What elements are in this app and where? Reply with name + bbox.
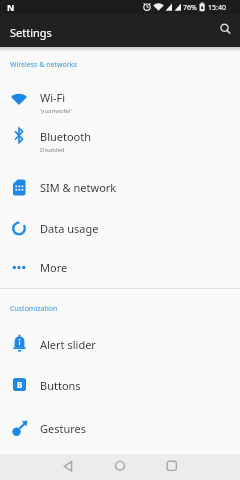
staticText: Wi-Fi (40, 90, 66, 105)
button[interactable] (0, 324, 240, 364)
staticText: B (17, 379, 23, 390)
button[interactable] (152, 454, 192, 480)
button[interactable] (0, 167, 240, 207)
staticText: SIM & network (40, 180, 117, 195)
staticText: Buttons (40, 378, 81, 393)
staticText: Wireless & networks (10, 60, 77, 70)
button[interactable] (212, 15, 238, 41)
button[interactable] (0, 208, 240, 248)
staticText: Disabled (40, 146, 65, 154)
staticText: 'yuanwofei' (40, 107, 72, 115)
staticText: Gestures (40, 421, 87, 436)
staticText: Bluetooth (40, 129, 92, 144)
button[interactable] (0, 365, 240, 405)
button[interactable] (0, 408, 240, 448)
button[interactable] (48, 454, 88, 480)
staticText: Data usage (40, 221, 99, 236)
staticText: More (40, 260, 68, 275)
staticText: N (7, 1, 15, 13)
button[interactable] (100, 454, 140, 480)
staticText: 15:40 (208, 3, 226, 13)
button[interactable] (0, 76, 240, 122)
staticText: Settings (10, 25, 52, 40)
staticText: Alert slider (40, 337, 96, 352)
button[interactable] (0, 122, 240, 164)
staticText: 76% (183, 3, 197, 13)
button[interactable] (0, 247, 240, 287)
staticText: Customization (10, 304, 58, 314)
